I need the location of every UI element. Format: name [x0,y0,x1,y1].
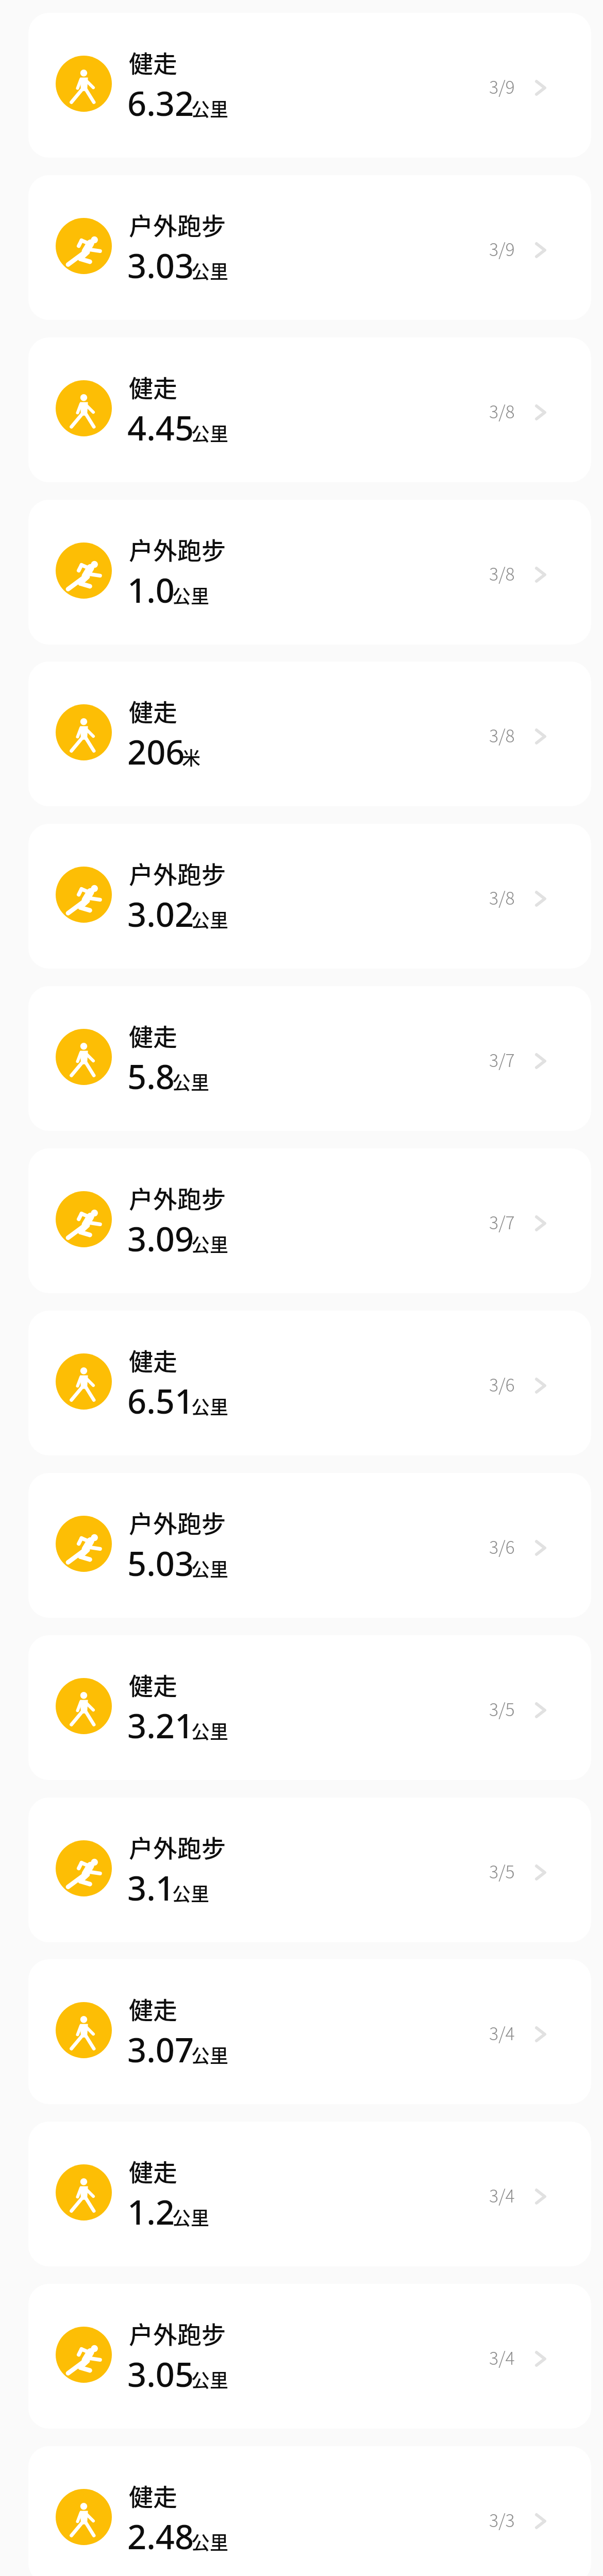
staticText: 公里 [191,2366,229,2393]
staticText: 户外跑步 [129,855,226,890]
staticText: 2.48 [127,2514,194,2560]
staticText: 3/6 [489,1534,515,1559]
other: 查看详情 [535,242,546,258]
staticText: 3.07 [127,2027,194,2073]
button[interactable]: 户外跑步 [28,2284,591,2429]
staticText: 健走 [129,2478,177,2513]
staticText: 户外跑步 [129,1504,226,1539]
button[interactable]: 健走 [28,2446,591,2576]
staticText: 公里 [172,2204,210,2230]
staticText: 公里 [191,419,229,446]
other: 查看详情 [535,2351,546,2367]
button[interactable]: 健走 [28,662,591,806]
staticText: 3.09 [127,1216,194,1262]
button[interactable]: 健走 [28,337,591,482]
staticText: 公里 [191,2041,229,2068]
other: 查看详情 [535,1540,546,1556]
other: 查看详情 [535,728,546,744]
staticText: 健走 [129,2153,177,2188]
staticText: 户外跑步 [129,531,226,566]
button[interactable]: 户外跑步 [28,1798,591,1942]
staticText: 健走 [129,693,177,728]
staticText: 4.45 [127,405,194,451]
staticText: 健走 [129,1667,177,1702]
staticText: 3/8 [489,885,515,910]
other: 查看详情 [535,891,546,907]
button[interactable]: 户外跑步 [28,1473,591,1618]
staticText: 米 [182,743,201,770]
staticText: 3/5 [489,1696,515,1721]
staticText: 3.05 [127,2351,194,2397]
staticText: 健走 [129,44,177,79]
staticText: 3/5 [489,1858,515,1884]
staticText: 3.03 [127,243,194,289]
staticText: 5.03 [127,1540,194,1586]
staticText: 公里 [191,257,229,284]
other: 查看详情 [535,567,546,583]
staticText: 6.32 [127,80,194,126]
staticText: 3/8 [489,561,515,586]
staticText: 公里 [191,95,229,122]
staticText: 1.0 [127,567,175,613]
other: 查看详情 [535,2026,546,2042]
staticText: 3/7 [489,1047,515,1072]
other: 查看详情 [535,1053,546,1069]
staticText: 公里 [191,1393,229,1419]
staticText: 3/8 [489,722,515,748]
staticText: 公里 [191,1555,229,1582]
other: 查看详情 [535,80,546,96]
staticText: 3/7 [489,1209,515,1234]
other: 查看详情 [535,1702,546,1718]
other: 查看详情 [535,2189,546,2205]
button[interactable]: 健走 [28,986,591,1131]
staticText: 3.21 [127,1703,194,1749]
button[interactable]: 户外跑步 [28,1148,591,1293]
staticText: 户外跑步 [129,1180,226,1215]
staticText: 3/4 [489,2345,515,2370]
staticText: 户外跑步 [129,2315,226,2350]
other: 查看详情 [535,404,546,420]
staticText: 公里 [191,2528,229,2555]
staticText: 公里 [172,1068,210,1095]
staticText: 206 [127,729,185,775]
button[interactable]: 户外跑步 [28,175,591,320]
staticText: 户外跑步 [129,1829,226,1864]
staticText: 健走 [129,1018,177,1053]
staticText: 公里 [191,1717,229,1744]
staticText: 健走 [129,1991,177,2026]
other: 查看详情 [535,1378,546,1394]
staticText: 3.1 [127,1865,175,1911]
button[interactable]: 健走 [28,2122,591,2266]
button[interactable]: 户外跑步 [28,500,591,645]
staticText: 3/4 [489,2182,515,2208]
staticText: 3/8 [489,398,515,423]
staticText: 公里 [172,582,210,608]
staticText: 1.2 [127,2189,175,2235]
staticText: 6.51 [127,1378,194,1424]
staticText: 3/6 [489,1371,515,1397]
staticText: 3/9 [489,236,515,261]
staticText: 3/9 [489,74,515,99]
button[interactable]: 健走 [28,1635,591,1780]
staticText: 健走 [129,1342,177,1377]
staticText: 户外跑步 [129,207,226,242]
button[interactable]: 户外跑步 [28,824,591,969]
staticText: 健走 [129,369,177,404]
other: 查看详情 [535,2513,546,2529]
staticText: 公里 [191,906,229,933]
staticText: 3/4 [489,2020,515,2045]
staticText: 公里 [191,1230,229,1257]
staticText: 3/3 [489,2507,515,2532]
other: 查看详情 [535,1215,546,1231]
staticText: 5.8 [127,1054,175,1099]
button[interactable]: 健走 [28,13,591,158]
button[interactable]: 健走 [28,1959,591,2104]
staticText: 公里 [172,1879,210,1906]
button[interactable]: 健走 [28,1311,591,1455]
staticText: 3.02 [127,891,194,937]
other: 查看详情 [535,1865,546,1880]
